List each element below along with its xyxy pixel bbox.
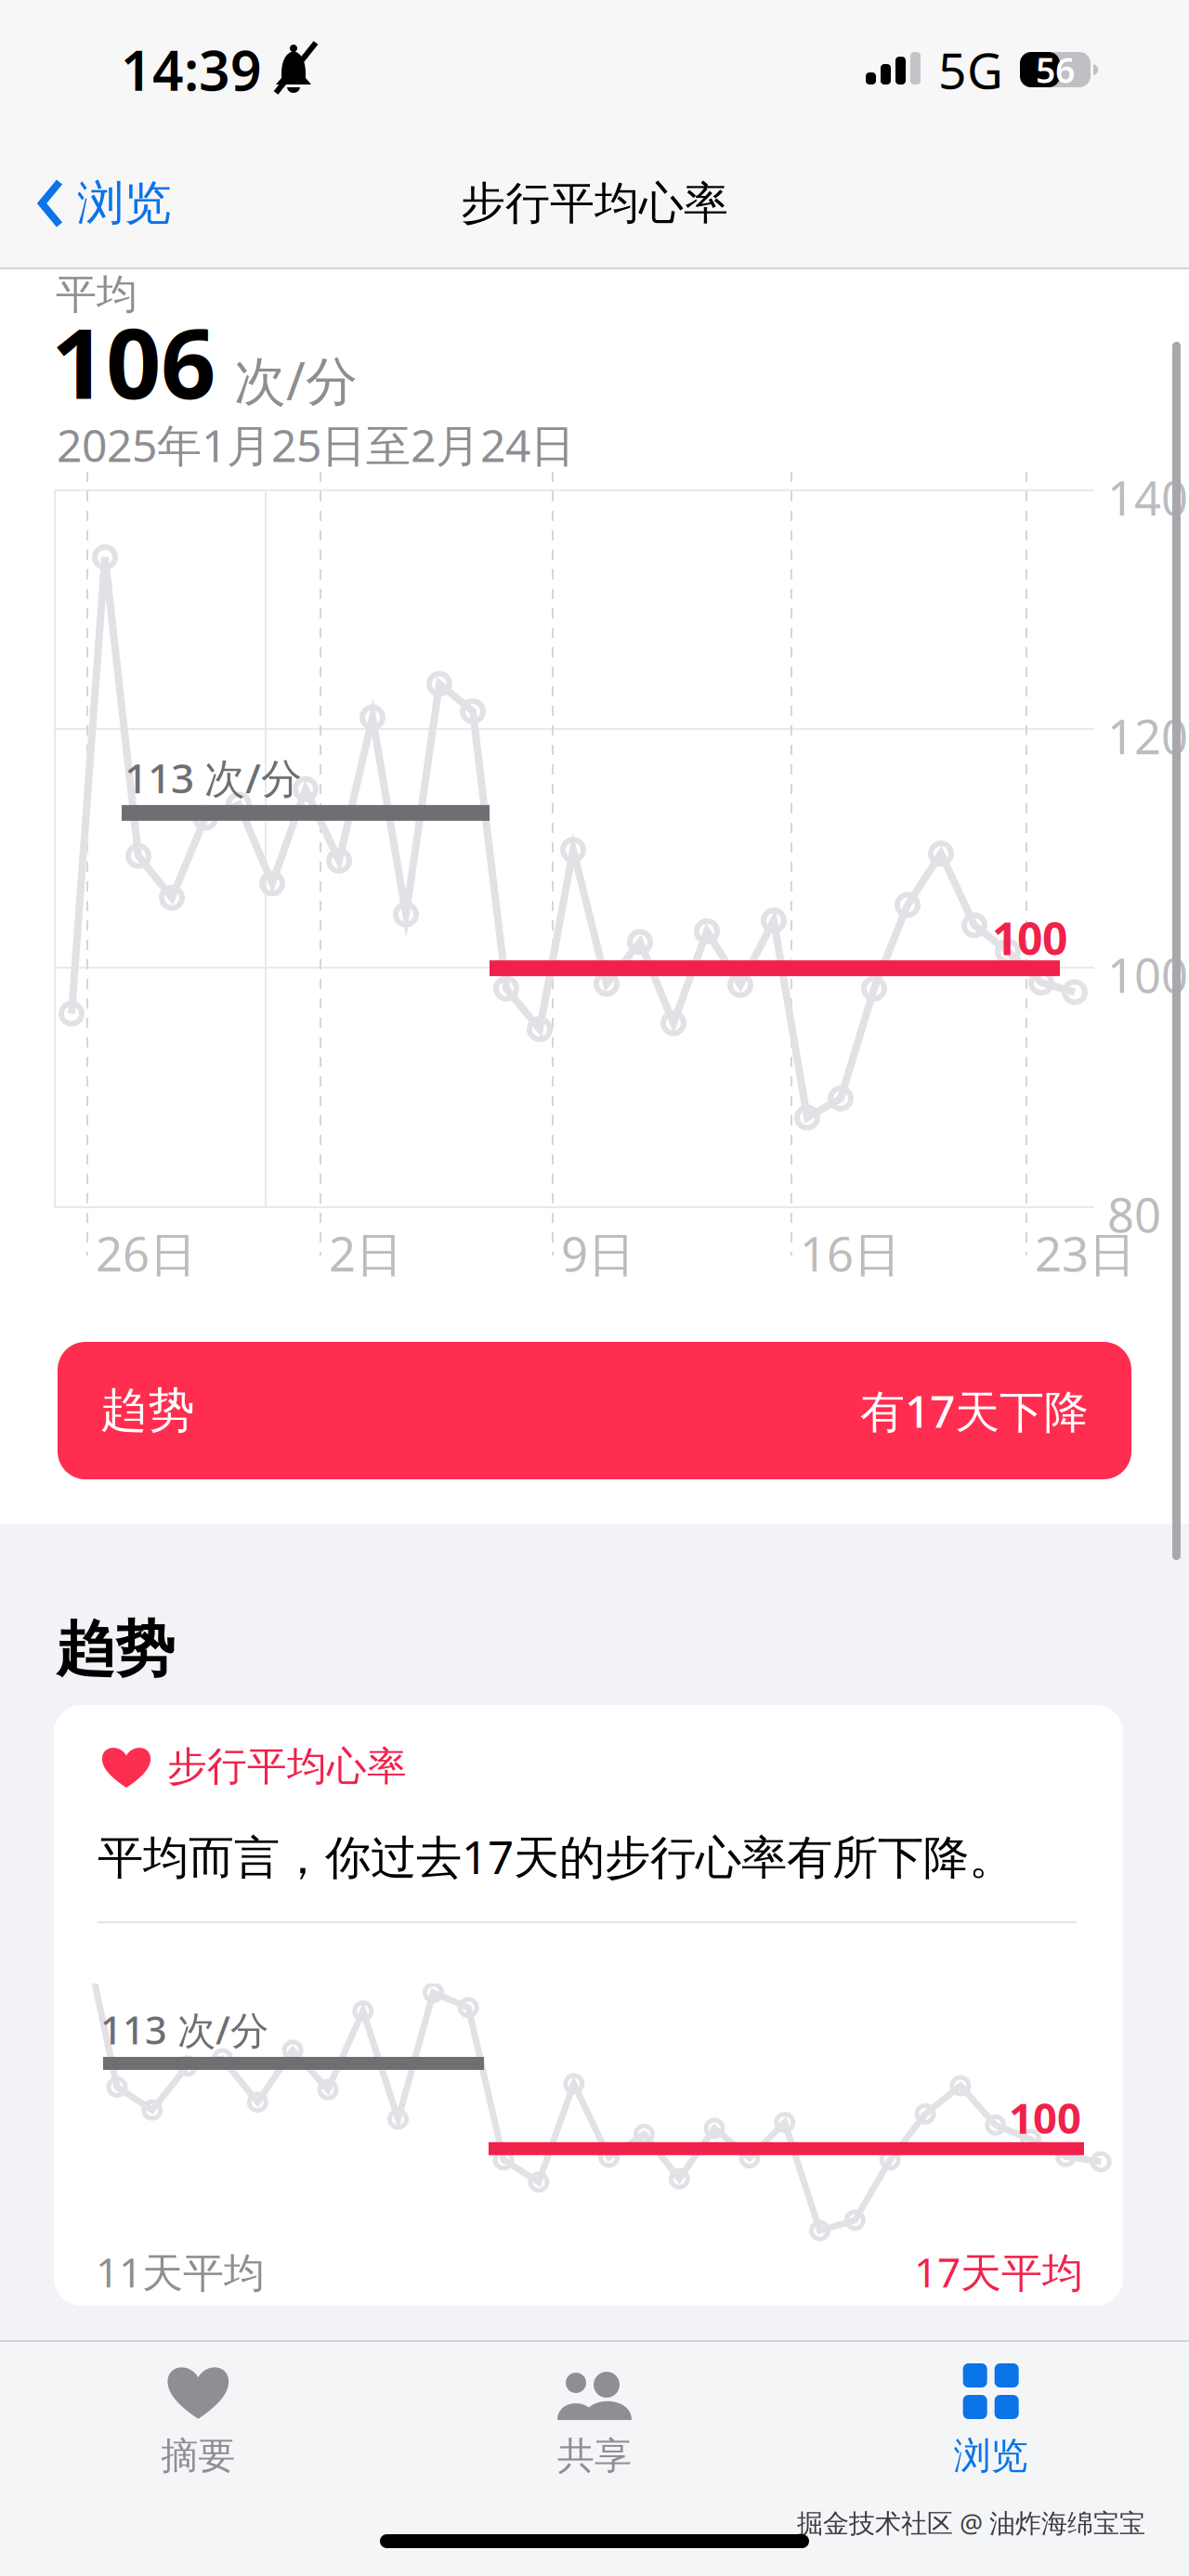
staticText: 平均而言，你过去17天的步行心率有所下降。	[98, 1826, 1014, 1886]
button[interactable]: 趋势	[58, 1342, 1131, 1479]
staticText: 100	[1009, 2089, 1081, 2145]
staticText: 113 次/分	[100, 2004, 268, 2055]
staticText: 26日	[96, 1222, 197, 1285]
staticText: 浏览	[954, 2433, 1028, 2479]
staticText: 113 次/分	[124, 750, 302, 805]
staticText: 120	[1107, 705, 1188, 767]
staticText: 有17天下降	[860, 1381, 1089, 1440]
staticText: 140	[1107, 466, 1188, 529]
staticText: 共享	[557, 2433, 632, 2479]
staticText: 23日	[1035, 1222, 1136, 1285]
staticText: 步行平均心率	[167, 1742, 407, 1791]
button[interactable]: 共享	[396, 2362, 793, 2479]
staticText: 步行平均心率	[461, 176, 728, 231]
staticText: 11天平均	[96, 2244, 265, 2299]
staticText: 掘金技术社区 @ 油炸海绵宝宝	[797, 2505, 1145, 2540]
staticText: 80	[1107, 1183, 1161, 1246]
staticText: 2025年1月25日至2月24日	[57, 415, 575, 474]
staticText: 次/分	[234, 345, 358, 415]
staticText: 平均	[56, 269, 137, 319]
staticText: 趋势	[100, 1382, 195, 1439]
staticText: 14:39	[121, 33, 262, 106]
button[interactable]: 浏览	[793, 2362, 1189, 2479]
button[interactable]: 摘要	[0, 2362, 396, 2479]
staticText: 100	[992, 908, 1067, 967]
staticText: 17天平均	[914, 2244, 1083, 2299]
button[interactable]: 浏览	[0, 163, 190, 243]
staticText: 2日	[329, 1222, 403, 1285]
staticText: 100	[1107, 943, 1188, 1006]
staticText: 浏览	[77, 174, 172, 232]
staticText: 16日	[800, 1222, 901, 1285]
staticText: 106	[51, 297, 216, 425]
staticText: 趋势	[56, 1613, 175, 1686]
staticText: 56	[1036, 47, 1075, 93]
staticText: 9日	[561, 1222, 635, 1285]
staticText: 5G	[938, 37, 1003, 103]
staticText: 摘要	[161, 2433, 235, 2479]
